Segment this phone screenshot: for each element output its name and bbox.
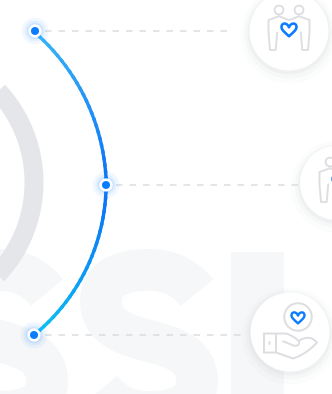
button[interactable]: People you care for: [0, 0, 332, 394]
button[interactable]: Your network: [0, 0, 332, 394]
button[interactable]: Give support: [0, 0, 332, 394]
